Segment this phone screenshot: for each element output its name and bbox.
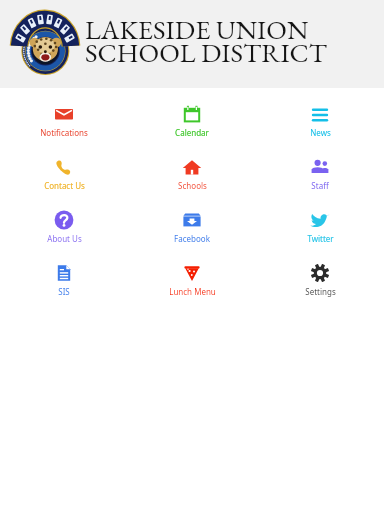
button[interactable]: Lunch Menu (128, 247, 256, 300)
staticText: Settings (305, 286, 336, 297)
button[interactable]: Contact Us (0, 141, 128, 194)
button[interactable]: Notifications (0, 88, 128, 141)
staticText: Lunch Menu (169, 286, 216, 297)
staticText: Calendar (175, 127, 209, 138)
staticText: Facebook (174, 233, 210, 244)
staticText: LAKESIDE UNION (85, 12, 309, 47)
button[interactable]: Staff (256, 141, 384, 194)
button[interactable]: Calendar (128, 88, 256, 141)
staticText: Schools (178, 180, 207, 191)
staticText: News (310, 127, 331, 138)
button[interactable]: About Us (0, 194, 128, 247)
button[interactable]: Settings (256, 247, 384, 300)
button[interactable]: News (256, 88, 384, 141)
button[interactable]: Twitter (256, 194, 384, 247)
staticText: SIS (58, 286, 70, 297)
staticText: SCHOOL DISTRICT (85, 35, 327, 70)
button[interactable]: Schools (128, 141, 256, 194)
staticText: About Us (47, 233, 82, 244)
staticText: Notifications (40, 127, 88, 138)
staticText: Twitter (307, 233, 334, 244)
button[interactable]: SIS (0, 247, 128, 300)
staticText: Contact Us (44, 180, 85, 191)
staticText: Staff (311, 180, 329, 191)
button[interactable]: Facebook (128, 194, 256, 247)
